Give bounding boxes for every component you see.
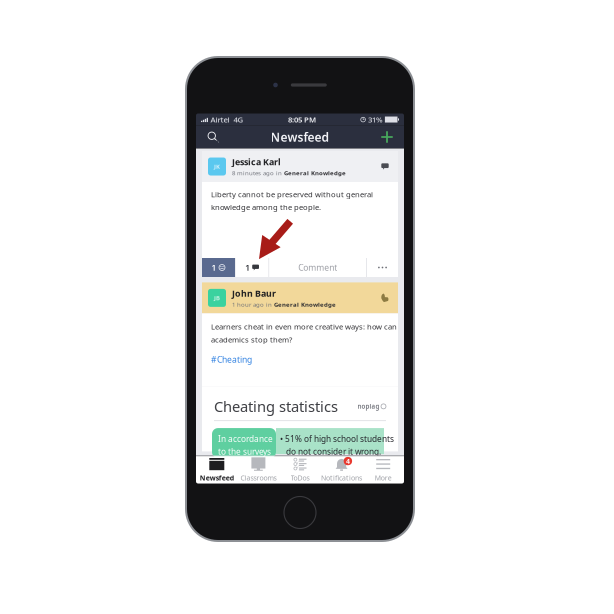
staticText: 4 — [346, 456, 350, 466]
staticText: Comment — [298, 262, 337, 273]
button[interactable]: Search — [200, 125, 226, 149]
staticText: JK — [214, 162, 220, 170]
button[interactable]: Newsfeed — [196, 456, 238, 484]
staticText: 8:05 PM — [288, 114, 316, 125]
staticText: Newsfeed — [270, 129, 329, 145]
staticText: 1 — [245, 262, 250, 273]
staticText: • 51% of high school students do not con… — [280, 433, 394, 457]
button[interactable]: 4 — [321, 456, 362, 484]
button[interactable]: 1 — [202, 258, 235, 277]
staticText: Learners cheat in even more creative way… — [211, 321, 397, 345]
staticText: John Baur — [232, 287, 276, 299]
staticText: More — [375, 473, 392, 482]
staticText: ToDos — [290, 473, 309, 482]
staticText: noplag — [357, 402, 379, 411]
staticText: 8 minutes ago in — [232, 169, 284, 177]
staticText: #Cheating — [211, 354, 252, 365]
button[interactable]: 1 — [236, 258, 269, 277]
staticText: In accordance to the surveys — [218, 433, 273, 457]
button[interactable]: More options — [367, 258, 398, 277]
staticText: Notifications — [321, 473, 362, 482]
staticText: Classrooms — [240, 473, 276, 482]
staticText: General Knowledge — [274, 300, 336, 308]
staticText: JB — [214, 294, 220, 302]
staticText: Newsfeed — [200, 473, 234, 482]
button[interactable]: Comments — [378, 159, 392, 173]
button[interactable]: Classrooms — [238, 456, 279, 484]
button[interactable]: ToDos — [279, 456, 321, 484]
staticText: Cheating statistics — [214, 396, 338, 416]
button[interactable]: Comment — [269, 258, 366, 277]
staticText: 1 — [212, 262, 217, 273]
staticText: General Knowledge — [284, 169, 346, 177]
button[interactable]: More — [362, 456, 404, 484]
staticText: Jessica Karl — [232, 156, 281, 168]
staticText: 1 hour ago in — [232, 300, 274, 308]
staticText: Liberty cannot be preserved without gene… — [211, 189, 373, 212]
button[interactable]: #Cheating — [211, 354, 252, 365]
staticText: Airtel 4G — [209, 114, 244, 125]
button[interactable]: Reactions — [378, 291, 392, 305]
button[interactable]: New post — [374, 125, 400, 149]
staticText: 31% — [366, 114, 385, 125]
